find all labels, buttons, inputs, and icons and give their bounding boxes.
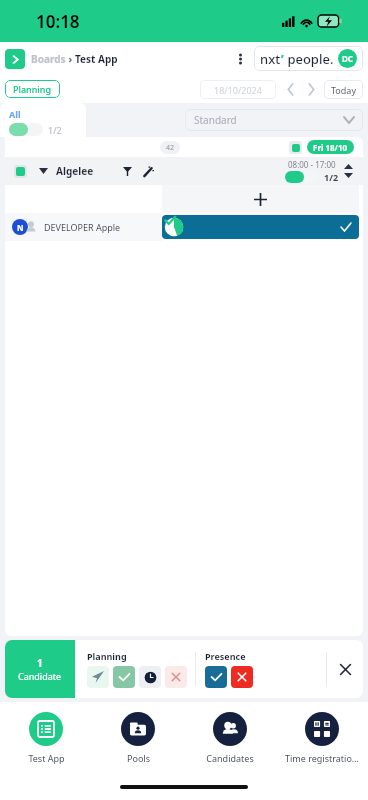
other: Decline bbox=[237, 672, 247, 682]
button[interactable]: Expand bbox=[36, 164, 50, 178]
staticText: nxt bbox=[260, 50, 281, 68]
other: Decline bbox=[339, 663, 352, 676]
button[interactable]: All bbox=[9, 106, 86, 137]
staticText: ’ bbox=[281, 50, 284, 68]
staticText: Boards bbox=[31, 52, 66, 66]
other: Confirm bbox=[211, 673, 222, 681]
button[interactable]: Decline bbox=[165, 666, 187, 688]
button[interactable]: Next bbox=[303, 81, 320, 98]
button[interactable]: Pools bbox=[92, 702, 184, 774]
staticText: Candidates bbox=[206, 752, 254, 764]
staticText: Fri 18/10 bbox=[313, 142, 348, 153]
staticText: Test App bbox=[75, 52, 118, 66]
staticText: 08:00 - 17:00 bbox=[288, 159, 336, 170]
staticText: 42 bbox=[166, 143, 175, 153]
button[interactable]: Back bbox=[5, 49, 25, 69]
staticText: 18/10/2024 bbox=[214, 84, 262, 96]
staticText: Algelee bbox=[56, 164, 94, 178]
button[interactable]: Add shift bbox=[162, 185, 359, 213]
staticText: 1/2 bbox=[48, 124, 62, 136]
button[interactable]: Planning bbox=[13, 80, 52, 98]
button[interactable] bbox=[162, 215, 359, 239]
other: Decline bbox=[171, 672, 181, 682]
button[interactable]: Filter bbox=[119, 163, 135, 179]
staticText: people. bbox=[284, 50, 334, 68]
button[interactable]: Time registratio… bbox=[276, 702, 368, 774]
staticText: Pools bbox=[127, 752, 150, 764]
button[interactable]: nxt bbox=[260, 46, 357, 71]
staticText: Time registratio… bbox=[285, 752, 359, 764]
button[interactable]: Auto plan bbox=[140, 163, 156, 179]
button[interactable]: Confirm bbox=[205, 666, 227, 688]
button[interactable]: More options bbox=[230, 49, 250, 69]
other: Pending bbox=[144, 671, 157, 684]
button[interactable]: Boards bbox=[31, 52, 118, 66]
button[interactable]: Adjust bbox=[344, 162, 355, 180]
button[interactable]: Today bbox=[331, 80, 356, 99]
button[interactable]: Test App bbox=[0, 702, 92, 774]
staticText: 1/2 bbox=[324, 171, 339, 183]
staticText: DC bbox=[342, 53, 353, 64]
button[interactable]: 1 bbox=[5, 640, 75, 698]
staticText: Test App bbox=[28, 752, 65, 764]
staticText: Planning bbox=[87, 650, 127, 662]
button[interactable]: Standard bbox=[185, 109, 363, 131]
staticText: Today bbox=[331, 84, 356, 96]
other: Send bbox=[92, 671, 104, 683]
staticText: Presence bbox=[205, 650, 246, 662]
staticText: DEVELOPER Apple bbox=[44, 221, 121, 233]
button[interactable]: 18/10/2024 bbox=[200, 80, 276, 99]
button[interactable]: Pending bbox=[139, 666, 161, 688]
staticText: 1 bbox=[37, 656, 43, 670]
staticText: All bbox=[9, 108, 21, 120]
button[interactable]: N bbox=[5, 213, 162, 241]
button[interactable]: Send bbox=[87, 666, 109, 688]
staticText: Standard bbox=[194, 113, 237, 127]
staticText: 10:18 bbox=[36, 10, 80, 33]
button[interactable]: Confirm bbox=[113, 666, 135, 688]
staticText: N bbox=[17, 222, 24, 233]
staticText: Planning bbox=[13, 83, 52, 95]
button[interactable]: Decline bbox=[231, 666, 253, 688]
other: Confirm bbox=[119, 673, 130, 681]
button[interactable]: Close bbox=[327, 640, 363, 698]
staticText: › bbox=[66, 52, 75, 66]
button[interactable]: Candidates bbox=[184, 702, 276, 774]
button[interactable]: Previous bbox=[282, 81, 299, 98]
staticText: Candidate bbox=[18, 670, 62, 682]
